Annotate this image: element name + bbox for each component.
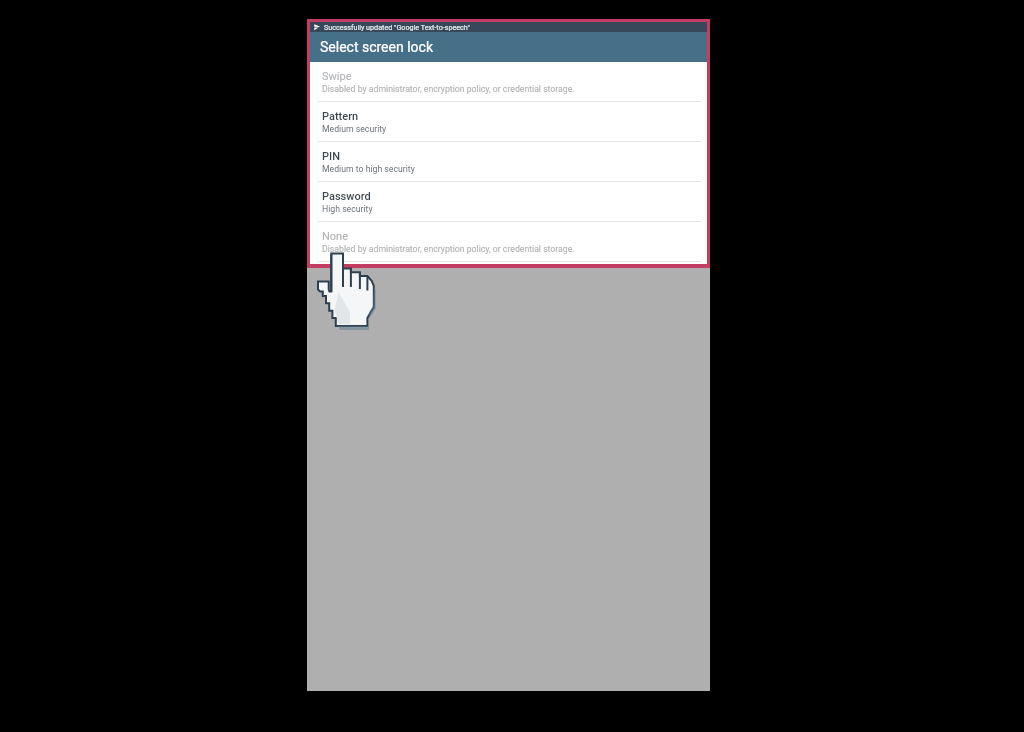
staticText: Password	[322, 190, 371, 203]
staticText: Medium security	[322, 124, 387, 134]
staticText: Successfully updated "Google Text-to-spe…	[324, 23, 470, 31]
staticText: Pattern	[322, 110, 359, 123]
button[interactable]: Pattern	[310, 102, 707, 142]
button[interactable]: Password	[310, 182, 707, 222]
button[interactable]: PIN	[310, 142, 707, 182]
button[interactable]: Swipe	[310, 62, 707, 102]
staticText: None	[322, 230, 349, 243]
button[interactable]: None	[310, 222, 707, 262]
button[interactable]: Select screen lock	[310, 32, 707, 62]
staticText: Swipe	[322, 70, 352, 83]
other: Play Store notification	[313, 23, 321, 31]
staticText: Disabled by administrator, encryption po…	[322, 244, 575, 254]
staticText: Disabled by administrator, encryption po…	[322, 84, 575, 94]
staticText: Medium to high security	[322, 164, 415, 174]
staticText: High security	[322, 204, 373, 214]
staticText: Select screen lock	[320, 39, 433, 55]
staticText: PIN	[322, 150, 340, 163]
other: Mouse pointer	[318, 252, 376, 330]
button[interactable]: Play Store notification	[310, 22, 707, 32]
